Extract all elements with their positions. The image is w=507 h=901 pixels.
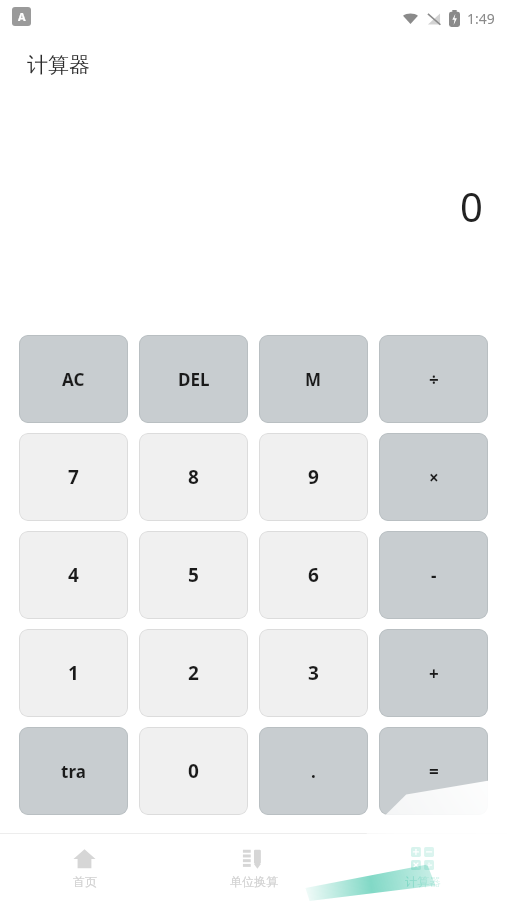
button[interactable]: × xyxy=(379,433,488,521)
staticText: ÷ xyxy=(429,368,439,391)
button[interactable]: tra xyxy=(19,727,128,815)
staticText: 3 xyxy=(308,660,319,686)
staticText: 5 xyxy=(188,562,199,588)
staticText: 单位换算 xyxy=(230,874,278,889)
staticText: - xyxy=(431,564,437,587)
staticText: 1 xyxy=(68,660,79,686)
button[interactable]: 1 xyxy=(19,629,128,717)
button[interactable]: 单位换算 xyxy=(169,834,338,901)
button[interactable]: 7 xyxy=(19,433,128,521)
staticText: tra xyxy=(61,760,86,783)
staticText: 1:49 xyxy=(467,9,495,28)
button[interactable]: ÷ xyxy=(379,335,488,423)
button[interactable]: 首页 xyxy=(0,834,169,901)
staticText: × xyxy=(429,466,439,489)
staticText: 计算器 xyxy=(405,874,441,889)
staticText: A xyxy=(18,9,26,24)
staticText: 2 xyxy=(188,660,199,686)
button[interactable]: . xyxy=(259,727,368,815)
staticText: 8 xyxy=(188,464,199,490)
staticText: 7 xyxy=(68,464,79,490)
staticText: DEL xyxy=(178,368,210,391)
staticText: 计算器 xyxy=(27,52,90,78)
button[interactable]: 8 xyxy=(139,433,248,521)
button[interactable]: 4 xyxy=(19,531,128,619)
button[interactable]: 6 xyxy=(259,531,368,619)
staticText: 0 xyxy=(460,179,483,233)
staticText: 6 xyxy=(308,562,319,588)
button[interactable]: - xyxy=(379,531,488,619)
button[interactable]: AC xyxy=(19,335,128,423)
button[interactable]: 0 xyxy=(139,727,248,815)
button[interactable]: DEL xyxy=(139,335,248,423)
button[interactable]: 9 xyxy=(259,433,368,521)
button[interactable]: + xyxy=(379,629,488,717)
staticText: = xyxy=(429,760,439,783)
button[interactable]: 3 xyxy=(259,629,368,717)
staticText: 首页 xyxy=(73,874,97,889)
staticText: 0 xyxy=(188,758,199,784)
button[interactable]: = xyxy=(379,727,488,815)
button[interactable]: M xyxy=(259,335,368,423)
staticText: M xyxy=(305,368,322,391)
staticText: + xyxy=(429,662,439,685)
button[interactable]: 5 xyxy=(139,531,248,619)
staticText: . xyxy=(311,760,316,783)
staticText: AC xyxy=(62,368,85,391)
button[interactable]: 2 xyxy=(139,629,248,717)
staticText: 9 xyxy=(308,464,319,490)
button[interactable]: 计算器 xyxy=(338,834,507,901)
staticText: 4 xyxy=(68,562,79,588)
